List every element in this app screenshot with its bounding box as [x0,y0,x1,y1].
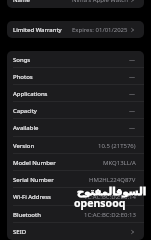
button[interactable]: Serial Number [7,171,144,188]
staticText: Nima's Apple Watch [72,0,128,4]
staticText: SEID [13,228,27,236]
staticText: Wi-Fi Address [13,193,51,201]
button[interactable]: Available [7,119,144,137]
staticText: Limited Warranty [13,26,62,34]
button[interactable]: Name [7,0,144,8]
staticText: opensooq [74,196,126,210]
staticText: — [129,56,136,64]
staticText: Songs [13,56,31,64]
staticText: Applications [13,90,48,98]
staticText: — [129,124,136,132]
button[interactable]: SEID [7,223,144,240]
staticText: Expires: 01/01/2025 [72,26,128,34]
staticText: HM2HL224Q87V [89,176,136,184]
staticText: 10.5 (21T576) [98,142,136,150]
staticText: Capacity [13,107,37,115]
button[interactable]: Version [7,137,144,154]
staticText: — [129,107,136,115]
staticText: — [129,90,136,98]
button[interactable]: Capacity [7,102,144,119]
staticText: السوقالمفتوح [77,186,147,198]
button[interactable]: Wi-Fi Address [7,188,144,206]
button[interactable]: Limited Warranty [7,21,144,38]
button[interactable]: Photos [7,68,144,85]
staticText: — [129,73,136,81]
staticText: Available [13,124,39,132]
button[interactable]: Applications [7,85,144,102]
staticText: Name [13,0,30,4]
staticText: 1C:AC:BC:D2:E0:13 [84,211,136,219]
staticText: Model Number [13,159,56,167]
staticText: Version [13,142,35,150]
staticText: MKQ13LL/A [103,159,136,167]
button[interactable]: Songs [7,51,144,68]
staticText: Bluetooth [13,211,41,219]
staticText: Serial Number [13,176,54,184]
button[interactable]: Model Number [7,154,144,171]
staticText: Photos [13,73,33,81]
staticText: 1C:AC:BC:D2:E0:14 [84,193,136,201]
button[interactable]: Bluetooth [7,206,144,223]
